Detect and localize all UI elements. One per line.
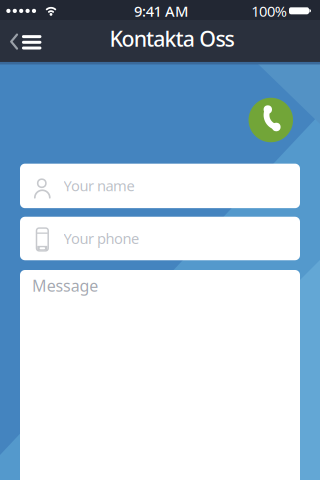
staticText: Kontakta Oss — [109, 24, 235, 53]
staticText: 100% — [251, 1, 287, 21]
staticText: Message — [32, 275, 98, 296]
button[interactable]: Message — [20, 270, 300, 480]
staticText: Your name — [63, 176, 134, 195]
button[interactable]: Your name — [20, 164, 300, 208]
button[interactable]: Your phone — [20, 217, 300, 260]
button[interactable]: Menu — [22, 35, 41, 49]
staticText: 9:41 AM — [134, 1, 188, 21]
button[interactable]: Call — [248, 97, 293, 142]
button[interactable]: Back — [9, 33, 20, 51]
staticText: Your phone — [63, 228, 139, 248]
